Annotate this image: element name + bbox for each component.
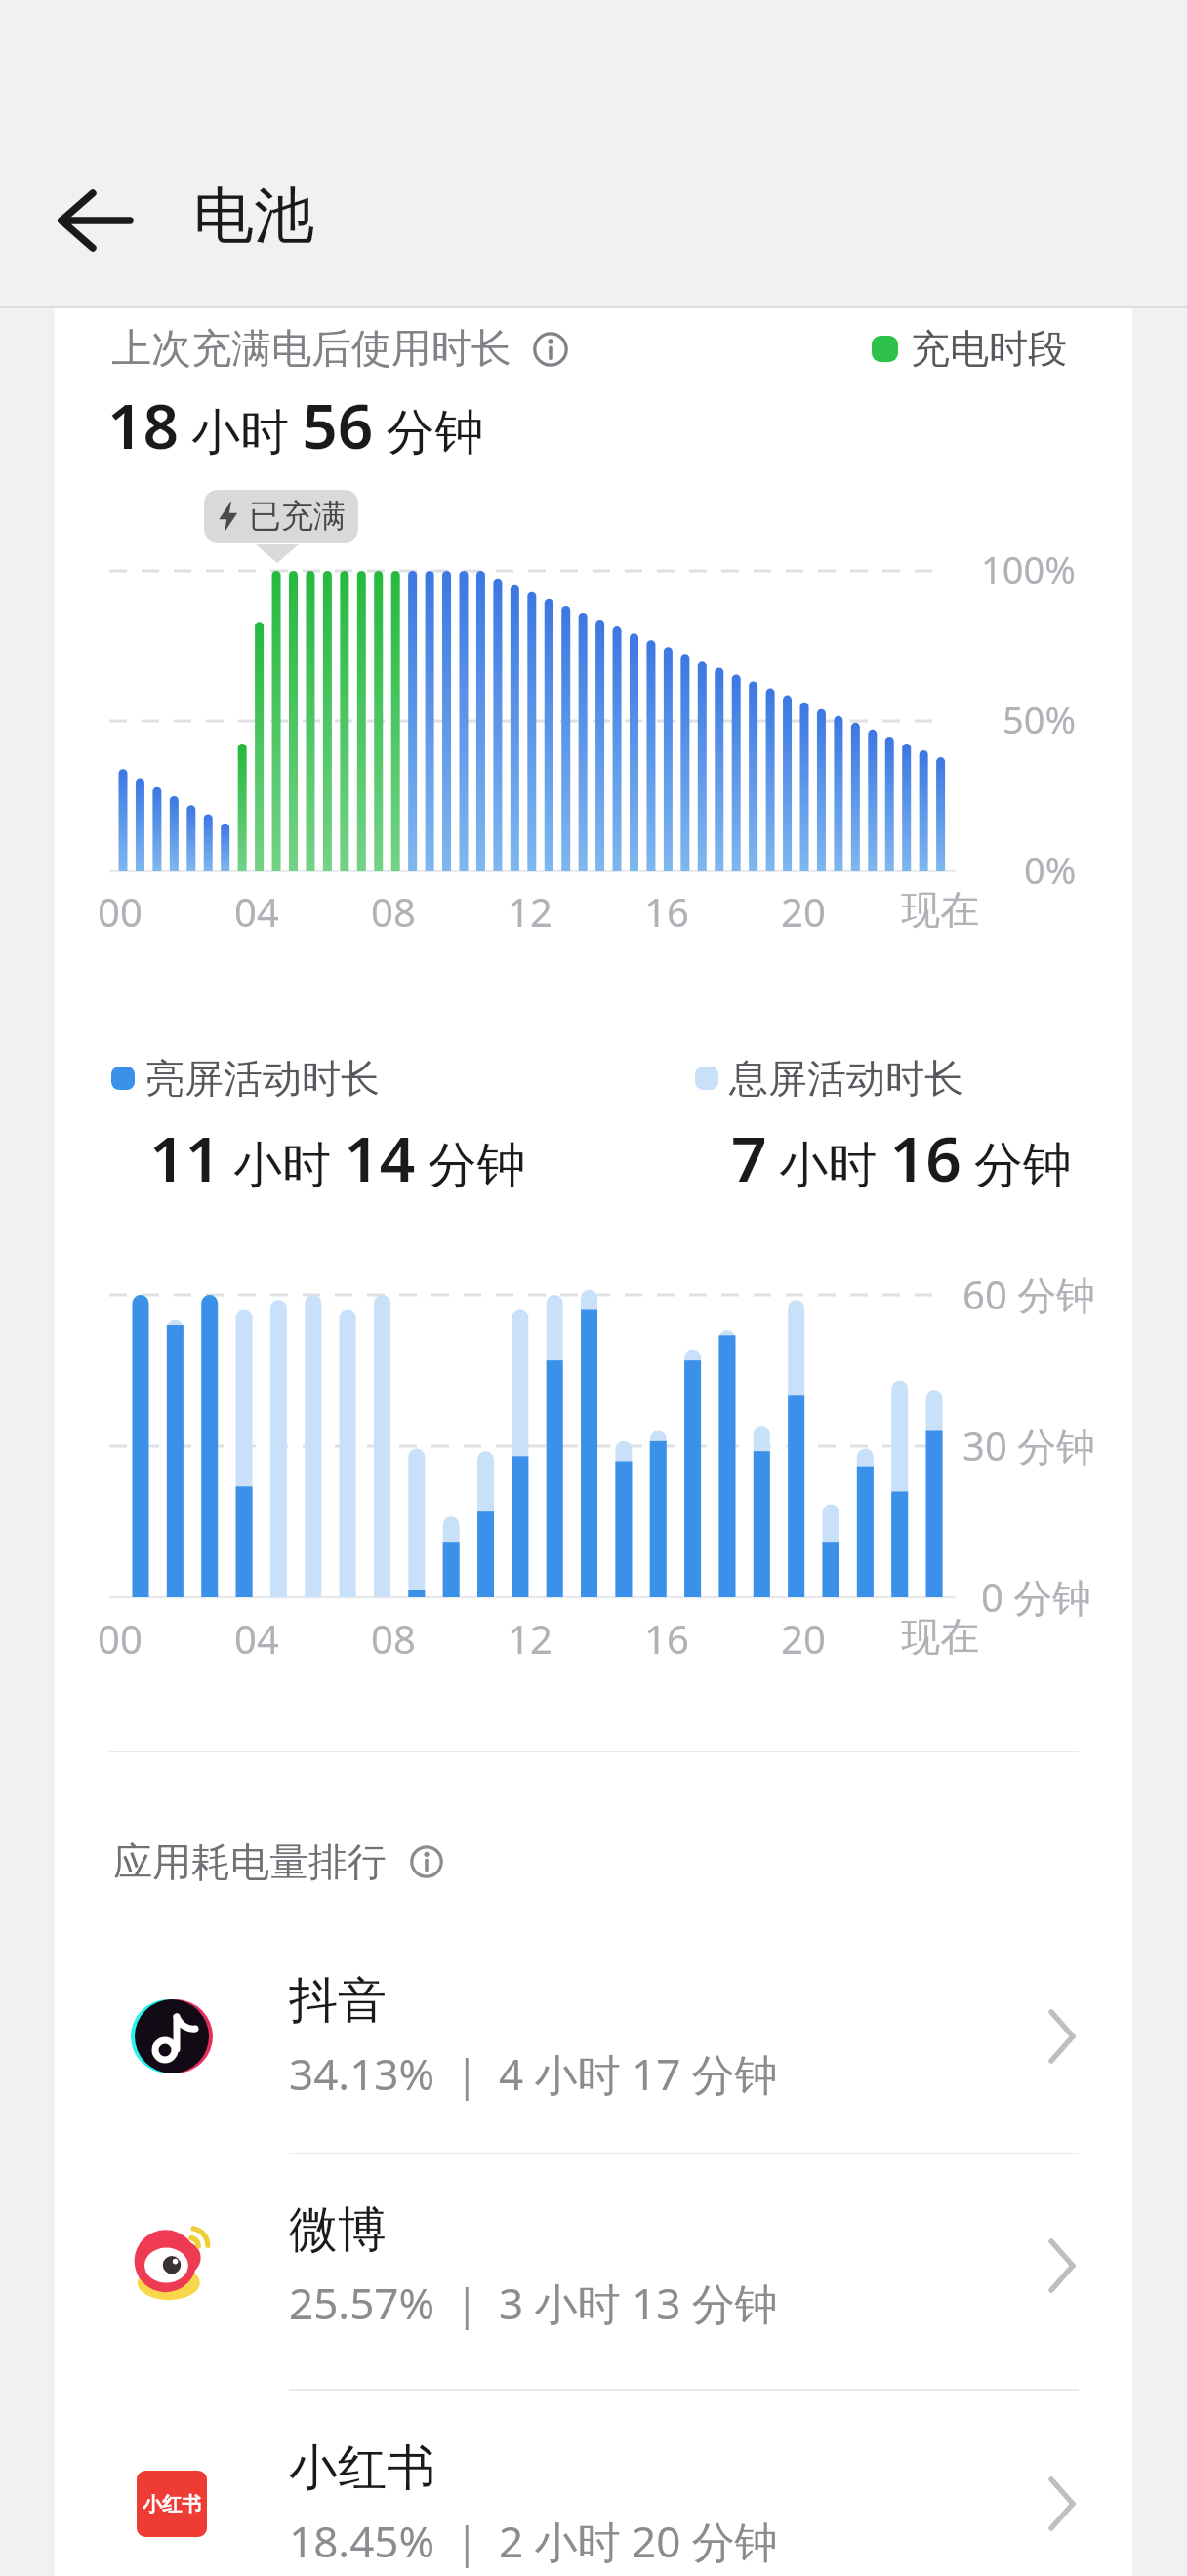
staticText: 0% (1024, 844, 1077, 895)
staticText: 16 (644, 885, 689, 938)
staticText: 60 分钟 (962, 1268, 1096, 1321)
staticText: 04 (234, 1612, 279, 1665)
staticText: 电池 (193, 178, 314, 254)
staticText: 小红书 (289, 2437, 435, 2499)
staticText: 34.13% ｜ 4 小时 17 分钟 (289, 2044, 778, 2103)
staticText: 18.45% ｜ 2 小时 20 分钟 (289, 2512, 778, 2570)
staticText: 08 (371, 1612, 416, 1665)
staticText: 20 (781, 885, 826, 938)
staticText: 已充满 (249, 496, 346, 537)
staticText: 7 小时 16 分钟 (731, 1115, 1072, 1200)
staticText: 50% (1003, 694, 1077, 745)
button[interactable]: 小红书 (55, 2401, 1132, 2576)
staticText: 0 分钟 (981, 1570, 1092, 1624)
staticText: 08 (371, 885, 416, 938)
staticText: 现在 (901, 885, 979, 934)
staticText: 上次充满电后使用时长 (111, 324, 512, 375)
staticText: 抖音 (289, 1970, 387, 2032)
staticText: 息屏活动时长 (729, 1054, 963, 1103)
staticText: 20 (781, 1612, 826, 1665)
staticText: 小红书 (143, 2492, 201, 2516)
staticText: 00 (98, 1612, 143, 1665)
staticText: 25.57% ｜ 3 小时 13 分钟 (289, 2274, 778, 2332)
button[interactable] (45, 174, 146, 267)
staticText: 04 (234, 885, 279, 938)
staticText: 18 小时 56 分钟 (107, 382, 484, 467)
button[interactable]: 抖音 (55, 1934, 1132, 2139)
staticText: 应用耗电量排行 (113, 1837, 387, 1886)
staticText: 30 分钟 (962, 1419, 1096, 1472)
staticText: 微博 (289, 2199, 387, 2261)
staticText: 现在 (901, 1612, 979, 1661)
staticText: 12 (508, 885, 553, 938)
staticText: 充电时段 (911, 324, 1067, 373)
staticText: 11 小时 14 分钟 (149, 1115, 526, 1200)
staticText: 00 (98, 885, 143, 938)
staticText: 12 (508, 1612, 553, 1665)
staticText: 100% (981, 543, 1076, 594)
staticText: 16 (644, 1612, 689, 1665)
staticText: 亮屏活动时长 (145, 1054, 380, 1103)
button[interactable]: 微博 (55, 2163, 1132, 2368)
